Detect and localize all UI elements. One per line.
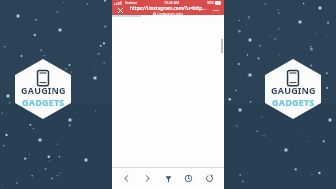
button[interactable]: Back: [118, 168, 135, 188]
staticText: GAUGING: [21, 84, 66, 96]
staticText: 96%: [207, 0, 214, 5]
button[interactable]: More options: [208, 5, 224, 15]
button[interactable]: Gauging Gadgets logo: [265, 59, 321, 119]
staticText: GADGETS: [22, 96, 65, 108]
staticText: Verizon: [125, 0, 138, 5]
staticText: https://l.instagram.com/?u=http...: [130, 5, 206, 11]
staticText: GAUGING: [271, 84, 316, 96]
staticText: l.instagram.com: [157, 11, 183, 15]
staticText: GADGETS: [272, 96, 315, 108]
button[interactable]: Close: [112, 5, 128, 15]
button[interactable]: Reload: [201, 168, 218, 188]
button[interactable]: Share: [160, 168, 177, 188]
button[interactable]: https://l.instagram.com/?u=http...: [128, 5, 208, 15]
button[interactable]: Gauging Gadgets logo: [15, 59, 71, 119]
button[interactable]: History: [180, 168, 197, 188]
button[interactable]: Forward: [139, 168, 156, 188]
staticText: 10:36 AM: [164, 0, 180, 5]
